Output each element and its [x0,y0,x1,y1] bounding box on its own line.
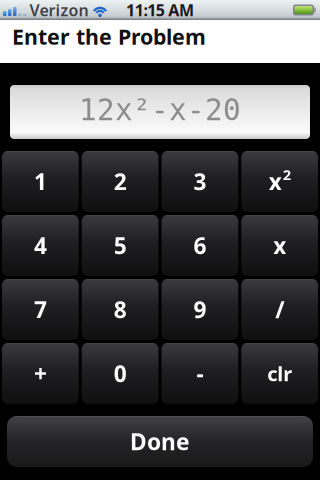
button[interactable]: Done [7,416,313,467]
staticText: 3 [193,166,206,196]
button[interactable]: 4 [2,215,79,276]
staticText: / [275,294,284,324]
staticText: 1 [34,166,47,196]
button[interactable]: 9 [161,279,238,340]
staticText: 4 [34,230,47,260]
staticText: 6 [193,230,206,260]
button[interactable]: + [2,343,79,404]
staticText: 9 [193,294,206,324]
staticText: 11:15 AM [126,0,194,21]
staticText: 7 [34,294,47,324]
button[interactable]: - [161,343,238,404]
staticText: clr [267,360,292,387]
staticText: - [196,358,203,388]
staticText: 12x²-x-20 [79,93,241,127]
staticText: 2 [283,165,291,184]
button[interactable]: 12x²-x-20 [10,85,310,139]
staticText: + [34,358,47,388]
staticText: 8 [114,294,127,324]
button[interactable]: 1 [2,151,79,212]
staticText: x [273,230,286,260]
button[interactable]: x [241,151,318,212]
staticText: 2 [114,166,127,196]
button[interactable]: 0 [82,343,159,404]
staticText: Enter the Problem [12,22,206,51]
staticText: Verizon [29,0,88,21]
button[interactable]: 5 [82,215,159,276]
staticText: 5 [114,230,127,260]
button[interactable]: 6 [161,215,238,276]
button[interactable]: clr [241,343,318,404]
staticText: Done [130,426,190,456]
staticText: x [269,166,282,196]
staticText: 0 [114,358,127,388]
button[interactable]: x [241,215,318,276]
button[interactable]: / [241,279,318,340]
button[interactable]: 7 [2,279,79,340]
button[interactable]: 2 [82,151,159,212]
button[interactable]: 8 [82,279,159,340]
button[interactable]: 3 [161,151,238,212]
